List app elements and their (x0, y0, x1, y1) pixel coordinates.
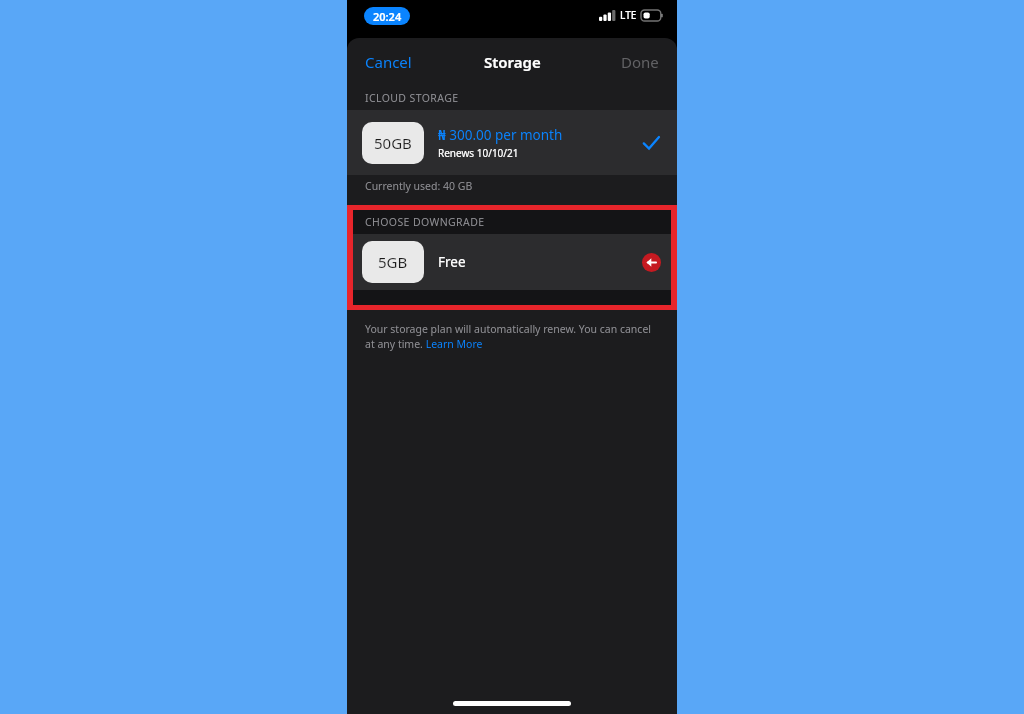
staticText: Your storage plan will automatically ren… (365, 322, 659, 351)
staticText: Currently used: 40 GB (365, 179, 473, 193)
staticText: ₦ 300.00 per month (438, 126, 563, 144)
staticText: ICLOUD STORAGE (365, 91, 459, 105)
button[interactable]: Cancel (347, 42, 430, 82)
staticText: 20:24 (373, 9, 402, 24)
staticText: Renews 10/10/21 (438, 146, 519, 160)
button[interactable]: Done (603, 42, 677, 82)
staticText: 50GB (374, 133, 412, 153)
staticText: Free (438, 253, 642, 271)
staticText: 5GB (378, 252, 408, 272)
staticText: Cancel (365, 52, 412, 72)
other: Downgrade (642, 253, 661, 272)
button[interactable]: 5GB (353, 234, 671, 290)
staticText: Storage (484, 52, 541, 72)
staticText: Done (621, 52, 659, 72)
staticText: CHOOSE DOWNGRADE (365, 215, 485, 229)
staticText: LTE (620, 8, 637, 22)
other: Selected (641, 133, 661, 153)
button[interactable]: 50GB (347, 110, 677, 175)
